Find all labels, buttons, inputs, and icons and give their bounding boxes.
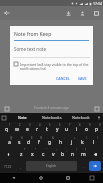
button[interactable]: s bbox=[14, 136, 24, 148]
staticText: v bbox=[52, 151, 55, 158]
button[interactable]: Share bbox=[78, 9, 87, 18]
staticText: Some text note bbox=[14, 46, 47, 52]
staticText: 7 bbox=[69, 123, 71, 127]
staticText: ; bbox=[66, 148, 67, 152]
staticText: # bbox=[21, 136, 23, 140]
staticText: d bbox=[27, 139, 31, 146]
button[interactable]: Settings bbox=[0, 113, 8, 122]
staticText: w bbox=[15, 126, 19, 133]
staticText: Notebooks bbox=[42, 115, 62, 120]
staticText: ' bbox=[46, 148, 47, 152]
staticText: 1 bbox=[9, 123, 11, 127]
staticText: y bbox=[56, 126, 59, 133]
button[interactable]: Important (will stay visible to the top … bbox=[10, 61, 93, 72]
button[interactable]: Back bbox=[2, 8, 12, 18]
staticText: Created: 4 minutes ago bbox=[34, 106, 69, 110]
staticText: b bbox=[61, 151, 65, 158]
staticText: g bbox=[48, 139, 52, 146]
button[interactable]: b bbox=[58, 148, 68, 160]
staticText: ?123 bbox=[4, 164, 12, 169]
button[interactable]: Note bbox=[8, 113, 37, 122]
staticText: 0 bbox=[99, 123, 101, 127]
button[interactable]: y bbox=[52, 123, 62, 136]
staticText: h bbox=[59, 139, 63, 146]
button[interactable]: Shift bbox=[1, 148, 16, 160]
staticText: m bbox=[81, 151, 86, 158]
button[interactable]: n bbox=[68, 148, 78, 160]
staticText: p bbox=[95, 126, 99, 133]
button[interactable]: m bbox=[78, 148, 88, 160]
staticText: ! bbox=[76, 148, 77, 152]
staticText: English bbox=[46, 164, 57, 168]
button[interactable]: CANCEL bbox=[53, 75, 73, 82]
button[interactable]: Enter bbox=[89, 161, 101, 171]
button[interactable]: Voice input bbox=[95, 113, 103, 122]
staticText: Note bbox=[18, 115, 27, 120]
button[interactable]: q bbox=[1, 123, 12, 136]
staticText: f bbox=[38, 139, 40, 146]
button[interactable]: l bbox=[88, 136, 99, 148]
button[interactable]: e bbox=[22, 123, 32, 136]
button[interactable]: g bbox=[44, 136, 55, 148]
staticText: + bbox=[74, 136, 76, 140]
staticText: : bbox=[56, 148, 57, 152]
staticText: q bbox=[5, 126, 9, 133]
button[interactable]: Back bbox=[0, 173, 27, 183]
staticText: u bbox=[65, 126, 69, 133]
button[interactable]: t bbox=[42, 123, 52, 136]
button[interactable]: u bbox=[62, 123, 72, 136]
button[interactable]: Backspace bbox=[88, 148, 102, 160]
button[interactable]: Recents bbox=[54, 173, 81, 183]
button[interactable]: o bbox=[82, 123, 92, 136]
staticText: ) bbox=[97, 136, 98, 140]
staticText: r bbox=[36, 126, 39, 133]
button[interactable]: ?123 bbox=[1, 160, 15, 172]
button[interactable]: f bbox=[34, 136, 44, 148]
staticText: 17:54 bbox=[93, 1, 102, 6]
staticText: k bbox=[81, 139, 84, 146]
button[interactable]: z bbox=[16, 148, 27, 160]
button[interactable]: SAVE bbox=[75, 75, 90, 82]
button[interactable]: Note from Keep bbox=[14, 31, 89, 41]
button[interactable]: Notebooks bbox=[37, 113, 66, 122]
staticText: SAVE bbox=[78, 76, 87, 81]
button[interactable]: d bbox=[24, 136, 34, 148]
button[interactable]: Notebook bbox=[66, 113, 95, 122]
button[interactable]: v bbox=[48, 148, 58, 160]
staticText: CANCEL bbox=[56, 76, 70, 81]
staticText: s bbox=[18, 139, 21, 146]
staticText: t bbox=[46, 126, 48, 133]
button[interactable]: , bbox=[15, 160, 25, 172]
button[interactable]: w bbox=[12, 123, 22, 136]
staticText: , bbox=[20, 164, 21, 169]
staticText: . bbox=[83, 164, 84, 169]
button[interactable]: j bbox=[66, 136, 77, 148]
button[interactable]: r bbox=[32, 123, 42, 136]
staticText: Notebook bbox=[72, 115, 90, 120]
button[interactable]: c bbox=[38, 148, 48, 160]
button[interactable]: Archive bbox=[92, 9, 101, 18]
button[interactable]: p bbox=[92, 123, 102, 136]
staticText: z bbox=[20, 151, 23, 158]
button[interactable]: Download bbox=[64, 9, 73, 18]
staticText: 3 bbox=[29, 123, 31, 127]
staticText: - bbox=[64, 136, 65, 140]
staticText: a bbox=[8, 139, 11, 146]
staticText: 6 bbox=[59, 123, 61, 127]
button[interactable]: Space bbox=[26, 161, 77, 171]
button[interactable]: More options bbox=[93, 105, 100, 112]
button[interactable]: k bbox=[77, 136, 88, 148]
button[interactable]: Keyboard bbox=[81, 173, 103, 183]
staticText: i bbox=[76, 126, 78, 133]
button[interactable]: i bbox=[72, 123, 82, 136]
staticText: j bbox=[71, 139, 73, 146]
staticText: $ bbox=[31, 136, 33, 140]
button[interactable]: a bbox=[4, 136, 14, 148]
staticText: e bbox=[26, 126, 29, 133]
button[interactable]: Home bbox=[27, 173, 54, 183]
button[interactable]: Add bbox=[3, 105, 10, 112]
button[interactable]: h bbox=[55, 136, 66, 148]
staticText: o bbox=[85, 126, 89, 133]
button[interactable]: x bbox=[27, 148, 38, 160]
